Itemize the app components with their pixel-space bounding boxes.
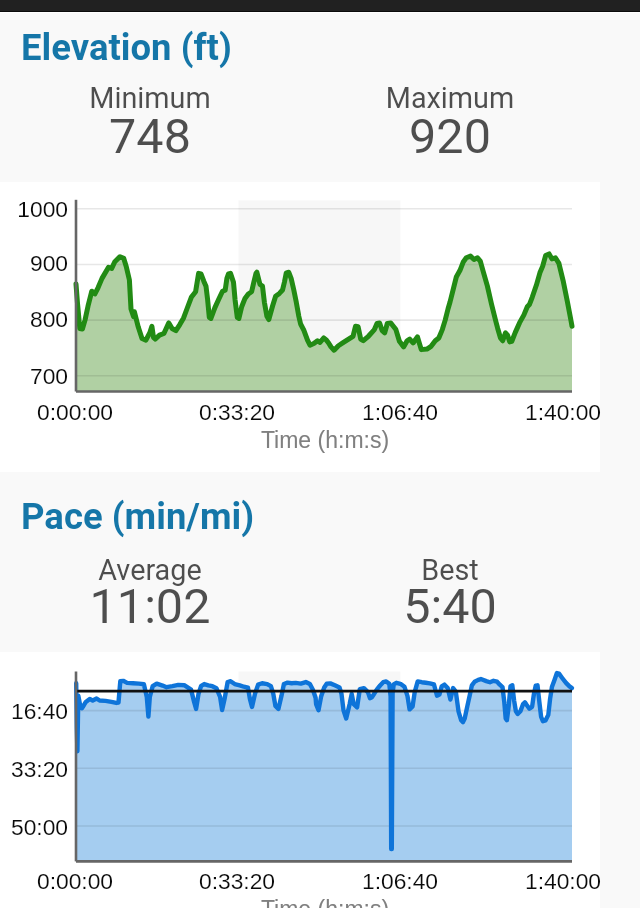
staticText: 900 [0,250,68,275]
staticText: 0:33:20 [137,868,337,893]
staticText: 33:20 [0,756,68,781]
staticText: Best [300,553,600,587]
staticText: 1:40:00 [463,868,640,893]
staticText: Average [0,553,300,587]
staticText: 1:06:40 [300,868,500,893]
staticText: 5:40 [300,578,600,635]
staticText: Time (h:m:s) [125,427,525,453]
staticText: 0:33:20 [137,399,337,424]
staticText: 11:02 [0,578,300,635]
staticText: 0:00:00 [0,399,175,424]
staticText: 1000 [0,196,68,221]
staticText: 1:40:00 [463,399,640,424]
staticText: 748 [0,108,300,165]
staticText: 0:00:00 [0,868,175,893]
staticText: 700 [0,363,68,388]
staticText: Time (h:m:s) [125,896,525,908]
staticText: Maximum [300,81,600,115]
button[interactable]: Pace (min/mi) [21,495,255,538]
staticText: 16:40 [0,698,68,723]
staticText: 800 [0,306,68,331]
staticText: 50:00 [0,814,68,839]
staticText: 920 [300,108,600,165]
button[interactable]: Elevation (ft) [21,26,232,69]
staticText: Minimum [0,81,300,115]
staticText: 1:06:40 [300,399,500,424]
